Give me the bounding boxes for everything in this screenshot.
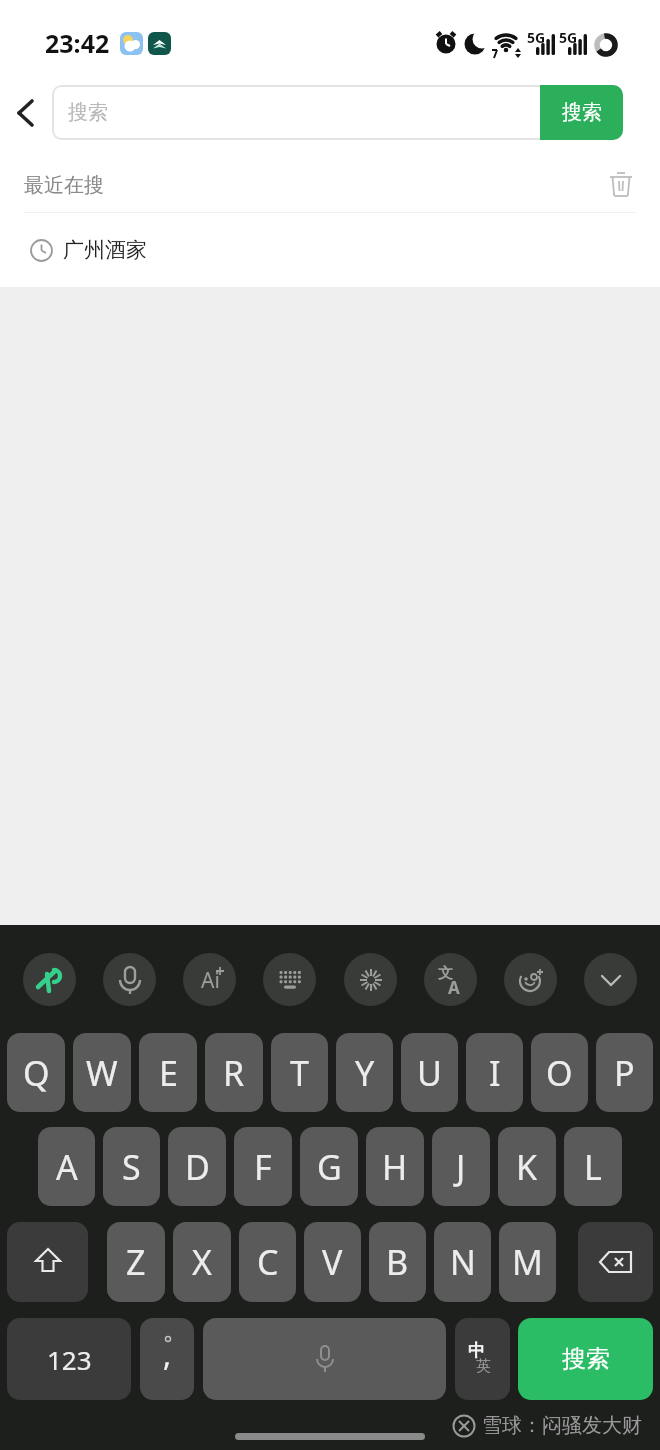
button[interactable]: D (168, 1127, 226, 1206)
button[interactable]: Ai (183, 953, 236, 1006)
button[interactable]: Z (107, 1222, 165, 1302)
button[interactable]: M (499, 1222, 556, 1302)
button[interactable] (7, 1222, 88, 1302)
staticText: J (456, 1144, 466, 1190)
button[interactable] (606, 170, 636, 200)
staticText: U (417, 1050, 442, 1096)
staticText: 搜索 (68, 100, 108, 125)
staticText: A (448, 976, 460, 999)
button[interactable]: 广州酒家 (0, 213, 660, 287)
staticText: P (614, 1050, 635, 1096)
staticText: 5G (527, 28, 546, 47)
staticText: Z (126, 1239, 146, 1285)
staticText: R (223, 1050, 245, 1096)
staticText: 搜索 (562, 100, 602, 125)
button[interactable] (103, 953, 156, 1006)
staticText: C (257, 1239, 279, 1285)
button[interactable]: L (564, 1127, 622, 1206)
button[interactable]: 搜索 (540, 85, 623, 140)
button[interactable]: Q (7, 1033, 65, 1112)
button[interactable]: 搜索 (518, 1318, 653, 1400)
button[interactable]: I (466, 1033, 523, 1112)
button[interactable] (263, 953, 316, 1006)
staticText: W (86, 1050, 118, 1096)
staticText: 搜索 (562, 1344, 610, 1374)
button[interactable] (23, 953, 76, 1006)
button[interactable]: 中 (455, 1318, 510, 1400)
staticText: Y (355, 1050, 375, 1096)
button[interactable]: Y (336, 1033, 393, 1112)
button[interactable] (504, 953, 557, 1006)
button[interactable] (584, 953, 637, 1006)
button[interactable]: C (239, 1222, 296, 1302)
button[interactable]: X (173, 1222, 231, 1302)
staticText: 英 (476, 1357, 491, 1376)
button[interactable]: V (304, 1222, 361, 1302)
button[interactable]: G (300, 1127, 358, 1206)
staticText: D (185, 1144, 210, 1190)
button[interactable]: A (38, 1127, 95, 1206)
button[interactable]: B (369, 1222, 426, 1302)
staticText: S (122, 1144, 141, 1190)
button[interactable] (0, 85, 52, 140)
button[interactable]: R (205, 1033, 263, 1112)
staticText: I (489, 1050, 501, 1096)
button[interactable] (578, 1222, 653, 1302)
button[interactable]: F (234, 1127, 292, 1206)
staticText: L (584, 1144, 602, 1190)
button[interactable]: J (432, 1127, 490, 1206)
button[interactable]: U (401, 1033, 458, 1112)
staticText: H (382, 1144, 408, 1190)
button[interactable] (344, 953, 397, 1006)
staticText: 雪球：闷骚发大财 (482, 1413, 642, 1438)
staticText: 文 (438, 964, 453, 983)
staticText: M (512, 1239, 543, 1285)
staticText: O (546, 1050, 573, 1096)
staticText: Ai (201, 966, 220, 995)
staticText: 5G (559, 28, 578, 47)
staticText: K (516, 1144, 538, 1190)
button[interactable]: T (271, 1033, 328, 1112)
staticText: B (386, 1239, 409, 1285)
button[interactable]: O (531, 1033, 588, 1112)
staticText: X (192, 1239, 212, 1285)
staticText: F (254, 1144, 272, 1190)
button[interactable]: 文 (424, 953, 477, 1006)
button[interactable]: 123 (7, 1318, 131, 1400)
button[interactable]: S (103, 1127, 160, 1206)
staticText: 中 (468, 1340, 485, 1361)
staticText: , (163, 1334, 172, 1375)
staticText: Q (23, 1050, 50, 1096)
staticText: N (450, 1239, 476, 1285)
staticText: A (56, 1144, 78, 1190)
button[interactable]: P (596, 1033, 653, 1112)
button[interactable]: K (498, 1127, 556, 1206)
staticText: E (159, 1050, 178, 1096)
staticText: T (290, 1050, 309, 1096)
staticText: G (317, 1144, 342, 1190)
button[interactable] (203, 1318, 446, 1400)
button[interactable]: H (366, 1127, 424, 1206)
button[interactable]: W (73, 1033, 131, 1112)
staticText: 最近在搜 (24, 173, 104, 198)
button[interactable]: E (139, 1033, 197, 1112)
button[interactable]: N (434, 1222, 491, 1302)
staticText: V (322, 1239, 343, 1285)
staticText: 广州酒家 (63, 237, 147, 263)
staticText: 123 (47, 1342, 92, 1377)
button[interactable]: , (140, 1318, 194, 1400)
staticText: 23:42 (45, 26, 110, 60)
